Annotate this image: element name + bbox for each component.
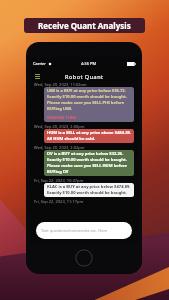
staticText: Exactly $10.00 worth should be bought. <box>47 94 127 100</box>
staticText: Fri, Sep 22, 2023, 11:17pm <box>34 199 84 204</box>
staticText: USB is a BUY at any price below $36.72. <box>47 88 126 94</box>
staticText: Please make sure you SELL HUM before <box>47 163 128 169</box>
button[interactable]: Receive Quant Analysis <box>24 18 145 33</box>
staticText: KLAC is a BUY at any price below $474.89… <box>47 184 131 190</box>
staticText: Exactly $10.00 worth should be bought. <box>47 157 127 163</box>
button[interactable]: Home <box>75 249 93 267</box>
staticText: Text questions/comments etc. Here <box>41 228 108 233</box>
staticText: BUYing USB. <box>47 106 73 112</box>
staticText: HUM is a SELL at any price above $484.38… <box>47 130 131 136</box>
staticText: Receive Quant Analysis <box>38 20 131 31</box>
staticText: Carrier <box>33 61 47 66</box>
button[interactable]: Menu <box>33 72 41 80</box>
staticText: Exactly $10.00 worth should be bought. <box>47 190 127 196</box>
staticText: Please make sure you SELL PHI before <box>47 100 125 106</box>
staticText: Wed, Sep 20, 2023, 11:02am <box>34 82 87 87</box>
staticText: Wed, Sep 20, 2023, 2:00pm <box>34 124 85 129</box>
staticText: Fri, Sep 22, 2023, 10:47pm <box>34 178 84 183</box>
button[interactable]: KLAC is a BUY at any price below $474.89… <box>44 183 134 197</box>
button[interactable]: USB is a BUY at any price below $36.72. <box>44 87 134 122</box>
button[interactable]: DV is a BUY at any price below $32.26. <box>44 150 134 176</box>
staticText: [IGNORE THIS] <box>47 115 77 121</box>
staticText: BUYing DV <box>47 169 69 175</box>
staticText: Wed, Sep 20, 2023, 2:02pm <box>34 145 85 150</box>
staticText: All HUM should be sold. <box>47 136 95 142</box>
staticText: Robot Quant <box>65 73 104 80</box>
staticText: DV is a BUY at any price below $32.26. <box>47 151 124 157</box>
button[interactable]: HUM is a SELL at any price above $484.38… <box>44 129 134 143</box>
staticText: 4:36 PM <box>81 61 97 66</box>
button[interactable]: Text questions/comments etc. Here <box>36 222 132 239</box>
